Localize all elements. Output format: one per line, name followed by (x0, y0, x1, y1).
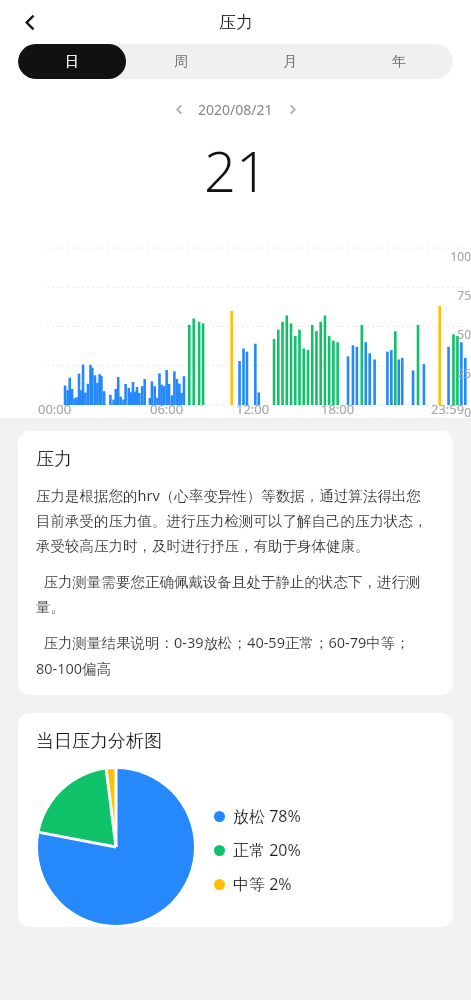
staticText: 放松 78% (233, 805, 301, 827)
staticText: 压力是根据您的hrv（心率变异性）等数据，通过算法得出您目前承受的压力值。进行压… (36, 485, 435, 555)
staticText: 18:00 (321, 400, 355, 418)
staticText: 100 (435, 248, 471, 264)
button[interactable]: 日 (18, 44, 126, 79)
staticText: 压力测量结果说明：0-39放松；40-59正常；60-79中等；80-100偏高 (36, 632, 435, 678)
staticText: 2020/08/21 (198, 100, 273, 119)
staticText: 25 (435, 365, 471, 381)
staticText: 压力 (36, 448, 72, 471)
staticText: 日 (65, 53, 79, 71)
staticText: 0 (435, 404, 471, 420)
staticText: 中等 2% (233, 873, 292, 895)
staticText: 06:00 (150, 400, 184, 418)
staticText: 75 (435, 287, 471, 303)
button[interactable]: Back (10, 2, 50, 42)
staticText: 周 (174, 53, 188, 71)
staticText: 21 (204, 132, 268, 208)
staticText: 压力 (219, 12, 253, 33)
staticText: 压力测量需要您正确佩戴设备且处于静止的状态下，进行测量。 (36, 571, 435, 616)
staticText: 23:59 (431, 400, 465, 418)
staticText: 50 (435, 326, 471, 342)
staticText: 正常 20% (233, 839, 301, 861)
staticText: 年 (392, 53, 406, 71)
button[interactable]: Previous day (166, 96, 192, 122)
button[interactable]: 月 (235, 44, 344, 79)
button[interactable]: 年 (344, 44, 453, 79)
staticText: 当日压力分析图 (36, 730, 162, 753)
button[interactable]: 周 (126, 44, 235, 79)
button[interactable]: Next day (279, 96, 305, 122)
staticText: 12:00 (236, 400, 270, 418)
staticText: 月 (283, 53, 297, 71)
staticText: 00:00 (38, 400, 72, 418)
